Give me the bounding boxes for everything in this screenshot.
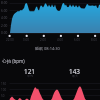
staticText: 50 (1, 94, 5, 98)
staticText: 121 (24, 67, 35, 76)
staticText: 150 (1, 82, 7, 86)
staticText: 8:00 (1, 1, 8, 5)
staticText: 6:00 (1, 9, 8, 13)
staticText: 睡眠 08:14:30 (35, 46, 60, 51)
staticText: 6:00 (74, 38, 80, 42)
staticText: 平均 (27, 74, 33, 78)
staticText: 4:00 (57, 38, 63, 42)
staticText: 2:00 (40, 38, 46, 42)
staticText: 最大 (72, 74, 78, 78)
staticText: 100 (1, 88, 7, 92)
staticText: 0:00 (23, 38, 29, 42)
staticText: 22:00 (6, 38, 14, 42)
staticText: 8:00 (91, 38, 97, 42)
staticText: 2:00 (1, 24, 8, 28)
staticText: 143 (69, 67, 80, 76)
staticText: 心拍 (bpm) (2, 58, 25, 64)
staticText: 0:00 (1, 31, 8, 35)
staticText: 4:00 (1, 16, 8, 20)
